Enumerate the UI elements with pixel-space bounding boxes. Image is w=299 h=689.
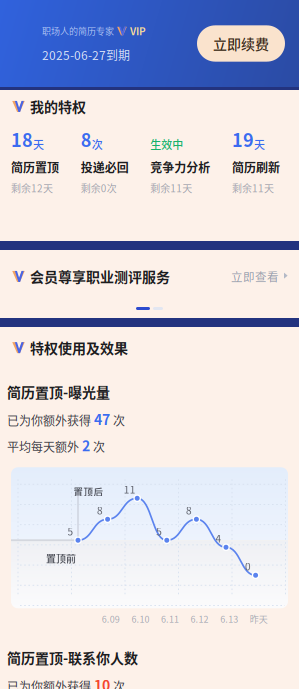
staticText: 昨天 — [250, 612, 268, 625]
staticText: VIP — [130, 24, 146, 38]
button[interactable]: 立即续费 — [197, 25, 285, 62]
staticText: 已为你额外获得 — [7, 412, 91, 429]
staticText: 职场人的简历专家 — [42, 24, 114, 37]
staticText: 8 — [186, 503, 192, 517]
staticText: 天 — [254, 136, 265, 152]
staticText: 简历置顶-联系你人数 — [7, 647, 138, 668]
staticText: 8 — [97, 503, 103, 517]
staticText: 2 — [82, 435, 90, 455]
staticText: 19 — [232, 126, 254, 152]
staticText: 立即查看 — [231, 268, 279, 284]
staticText: 6.11 — [161, 612, 179, 625]
staticText: 6.12 — [191, 612, 209, 625]
staticText: 47 — [94, 409, 110, 429]
staticText: 竞争力分析 — [150, 158, 210, 176]
staticText: 11 — [124, 482, 136, 496]
staticText: 4 — [215, 531, 221, 545]
staticText: 置顶前 — [46, 551, 76, 565]
staticText: 8 — [81, 126, 92, 152]
staticText: 生效中 — [150, 136, 183, 152]
staticText: 会员尊享职业测评服务 — [30, 266, 170, 286]
staticText: 0 — [245, 559, 251, 573]
staticText: 特权使用及效果 — [30, 337, 128, 357]
staticText: 次 — [93, 438, 105, 455]
staticText: 简历刷新 — [232, 158, 280, 176]
staticText: 已为你额外获得 — [7, 677, 91, 689]
staticText: 6.09 — [102, 612, 120, 625]
staticText: 置顶后 — [73, 484, 103, 498]
staticText: 简历置顶-曝光量 — [7, 381, 110, 402]
staticText: 剩余12天 — [11, 181, 53, 195]
staticText: 6.13 — [220, 612, 238, 625]
staticText: 次 — [113, 677, 125, 689]
staticText: 18 — [11, 126, 33, 152]
staticText: 5 — [67, 524, 73, 538]
staticText: 剩余11天 — [150, 181, 192, 195]
staticText: 2025-06-27到期 — [42, 46, 130, 63]
staticText: 10 — [94, 675, 110, 689]
staticText: 平均每天额外 — [7, 438, 79, 455]
staticText: 剩余0次 — [81, 181, 117, 195]
staticText: 立即续费 — [213, 33, 269, 54]
staticText: 简历置顶 — [11, 158, 59, 176]
staticText: 5 — [156, 524, 162, 538]
button[interactable]: 会员尊享职业测评服务 — [0, 250, 299, 286]
staticText: 投递必回 — [81, 158, 129, 176]
staticText: 6.10 — [131, 612, 149, 625]
staticText: 次 — [113, 412, 125, 429]
staticText: 剩余11天 — [232, 181, 274, 195]
staticText: 次 — [92, 136, 103, 152]
staticText: 我的特权 — [30, 96, 86, 116]
staticText: 天 — [33, 136, 44, 152]
